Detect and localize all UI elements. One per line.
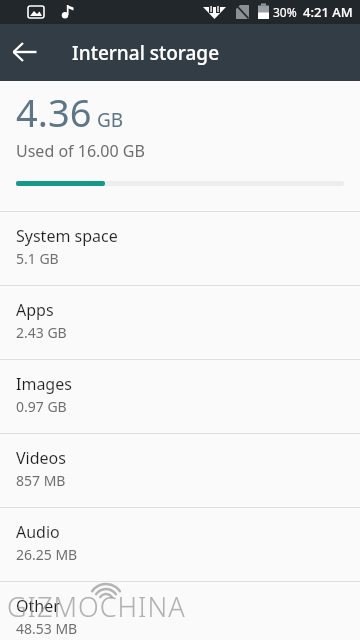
staticText: Internal storage xyxy=(72,40,220,66)
staticText: Apps xyxy=(16,299,54,321)
staticText: 4.36 xyxy=(16,86,92,138)
staticText: Used of 16.00 GB xyxy=(16,140,145,162)
staticText: 5.1 GB xyxy=(16,249,59,268)
staticText: Other xyxy=(16,595,60,617)
staticText: Audio xyxy=(16,521,60,543)
staticText: 48.53 MB xyxy=(16,619,78,638)
button[interactable]: Videos xyxy=(0,434,360,507)
staticText: 30% xyxy=(273,4,297,20)
staticText: System space xyxy=(16,225,118,247)
button[interactable]: Apps xyxy=(0,286,360,359)
staticText: Videos xyxy=(16,447,66,469)
button[interactable]: System space xyxy=(0,212,360,285)
staticText: 857 MB xyxy=(16,471,66,490)
button[interactable]: Audio xyxy=(0,508,360,581)
staticText: GB xyxy=(97,107,124,133)
staticText: 0.97 GB xyxy=(16,397,67,416)
staticText: GIZMOCHINA xyxy=(7,588,186,625)
staticText: 26.25 MB xyxy=(16,545,78,564)
button[interactable]: Images xyxy=(0,360,360,433)
button[interactable]: Other xyxy=(0,582,360,640)
staticText: 2.43 GB xyxy=(16,323,67,342)
staticText: 4:21 AM xyxy=(303,3,353,21)
staticText: Images xyxy=(16,373,72,395)
button[interactable] xyxy=(4,28,52,76)
